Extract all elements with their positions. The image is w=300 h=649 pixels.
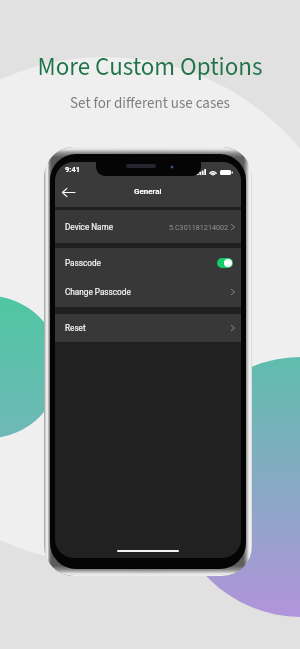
staticText: Device Name: [65, 222, 114, 232]
button[interactable]: Back: [58, 182, 78, 202]
staticText: General: [134, 187, 162, 196]
staticText: 9:41: [65, 165, 81, 174]
button[interactable]: Reset: [55, 314, 241, 342]
staticText: Passcode: [65, 258, 101, 268]
staticText: More Custom Options: [0, 49, 300, 85]
button[interactable]: Change Passcode: [55, 277, 241, 307]
staticText: Reset: [65, 323, 86, 333]
button[interactable]: Passcode: [55, 248, 241, 277]
button[interactable]: Device Name: [55, 210, 241, 243]
staticText: Change Passcode: [65, 287, 131, 297]
staticText: Set for different use cases: [0, 93, 300, 114]
staticText: 5.C301181214002: [169, 223, 229, 231]
